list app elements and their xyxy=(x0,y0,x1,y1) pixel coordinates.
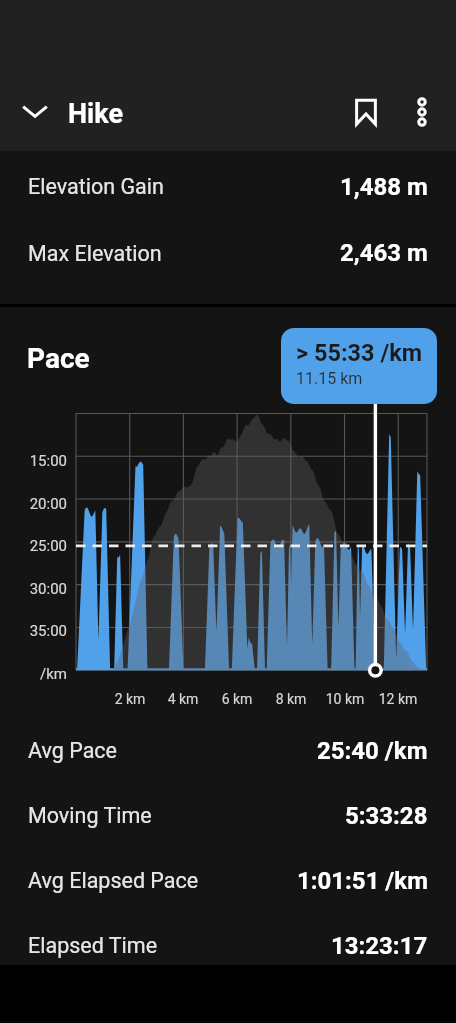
staticText: Hike xyxy=(68,98,124,130)
staticText: Elevation Gain xyxy=(28,174,164,199)
staticText: Max Elevation xyxy=(28,241,162,266)
button[interactable]: > 55:33 /km xyxy=(281,328,437,404)
staticText: Pace xyxy=(27,342,90,375)
staticText: 6 km xyxy=(207,691,267,707)
staticText: 12 km xyxy=(368,691,428,707)
button[interactable]: Elapsed Time xyxy=(0,913,456,978)
staticText: 4 km xyxy=(153,691,213,707)
button[interactable]: More options xyxy=(394,84,450,140)
button[interactable]: Moving Time xyxy=(0,783,456,848)
staticText: 35:00 xyxy=(0,622,67,640)
staticText: 11.15 km xyxy=(296,369,363,388)
staticText: Avg Pace xyxy=(28,738,117,763)
staticText: > 55:33 /km xyxy=(296,339,423,367)
staticText: 8 km xyxy=(261,691,321,707)
button[interactable]: Avg Elapsed Pace xyxy=(0,848,456,913)
staticText: 20:00 xyxy=(0,495,67,513)
staticText: 25:00 xyxy=(0,537,67,555)
button[interactable]: Avg Pace xyxy=(0,718,456,783)
button[interactable]: Hike xyxy=(0,76,134,148)
button[interactable]: Elevation Gain xyxy=(0,153,456,220)
staticText: Avg Elapsed Pace xyxy=(28,868,199,893)
staticText: 13:23:17 xyxy=(331,932,428,960)
staticText: Moving Time xyxy=(28,803,152,828)
staticText: 1:01:51 /km xyxy=(297,867,428,895)
staticText: 2,463 m xyxy=(340,239,428,267)
staticText: 30:00 xyxy=(0,580,67,598)
button[interactable]: Bookmark xyxy=(338,84,394,140)
staticText: 1,488 m xyxy=(340,173,428,201)
staticText: 15:00 xyxy=(0,452,67,470)
staticText: Elapsed Time xyxy=(28,933,158,958)
staticText: 10 km xyxy=(315,691,375,707)
button[interactable]: Max Elevation xyxy=(0,220,456,286)
staticText: 25:40 /km xyxy=(317,737,428,765)
staticText: /km xyxy=(0,665,67,683)
staticText: 2 km xyxy=(100,691,160,707)
staticText: 5:33:28 xyxy=(345,802,428,830)
